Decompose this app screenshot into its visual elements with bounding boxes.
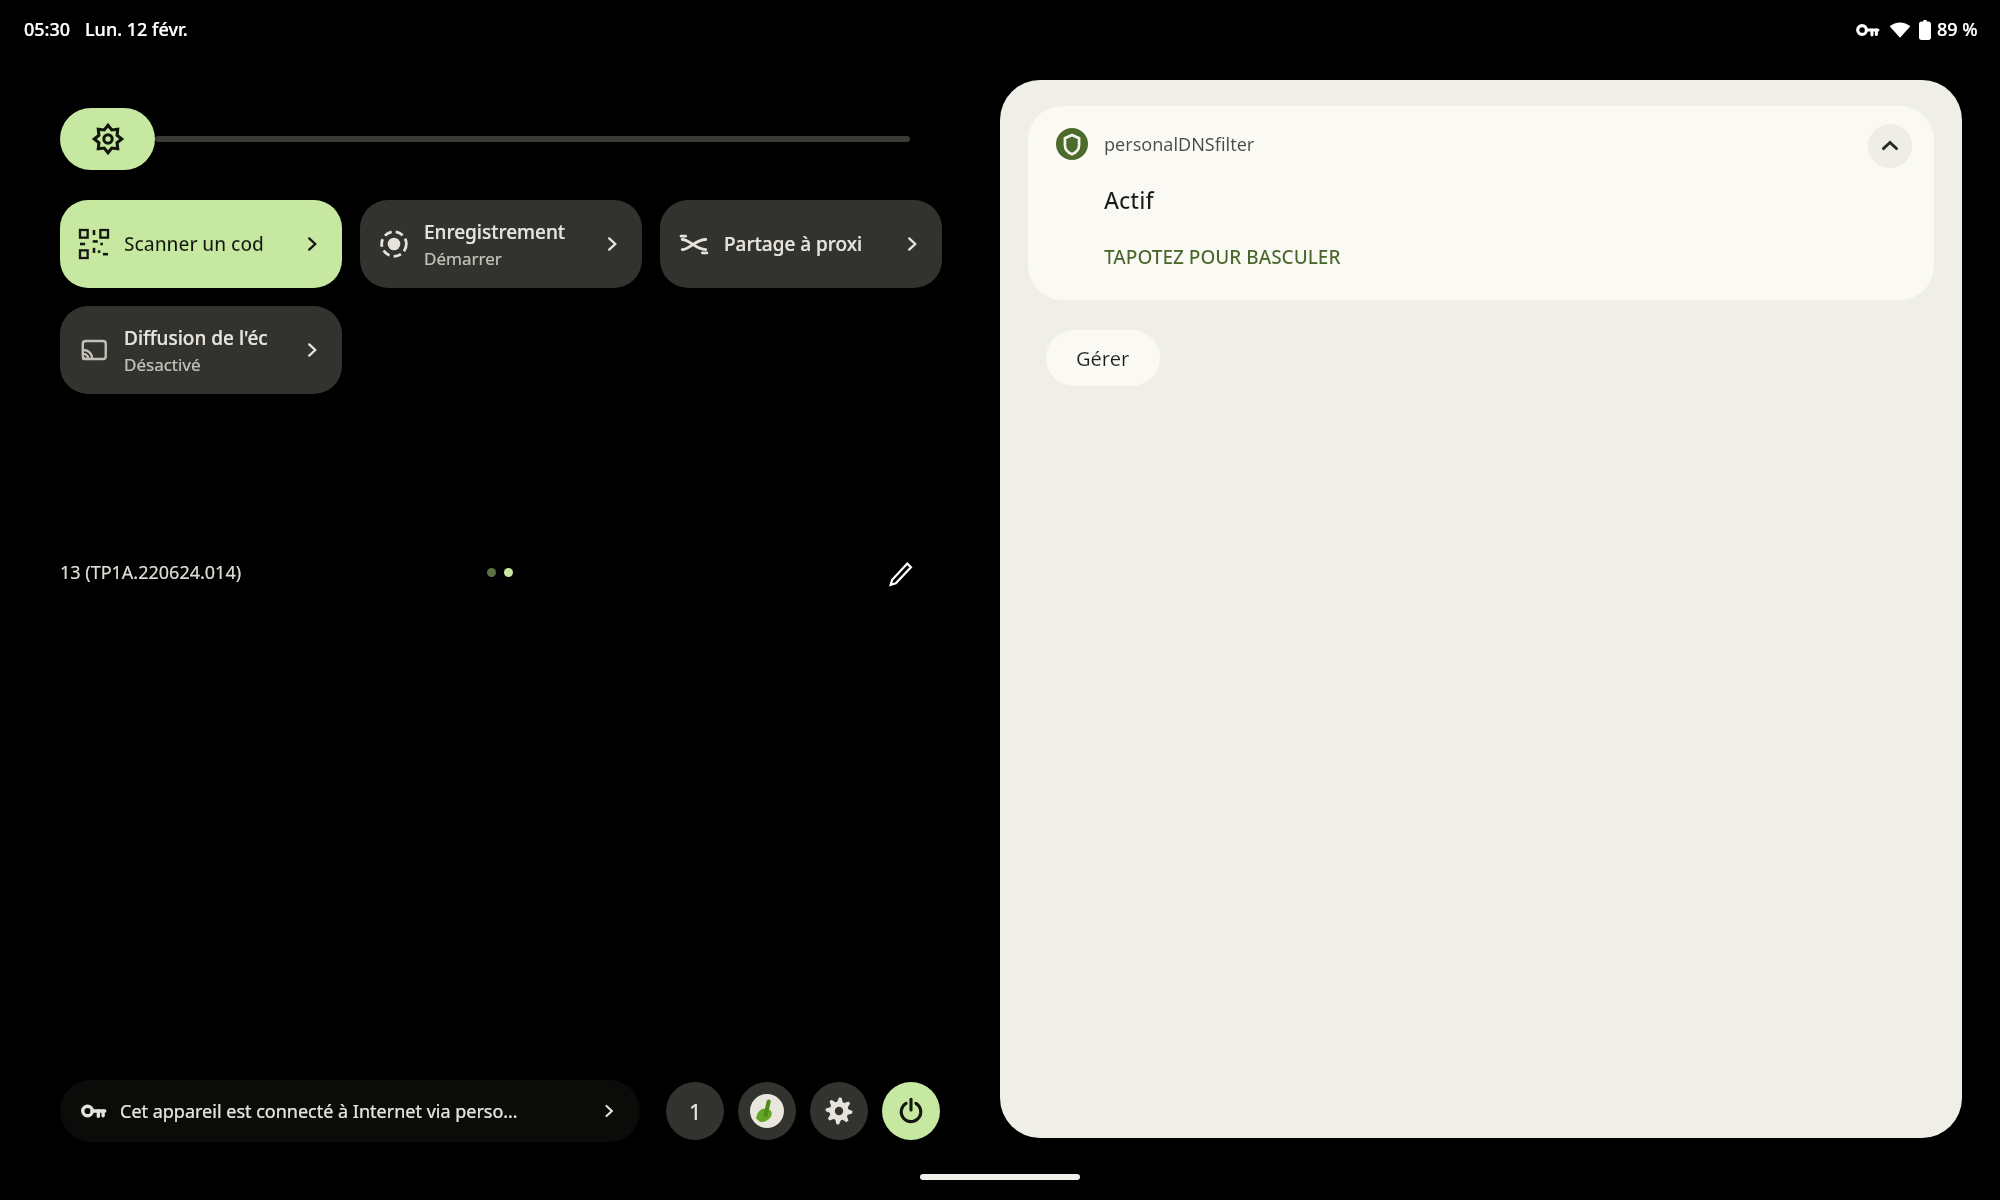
staticText: Diffusion de l'éc [124,325,268,351]
button[interactable]: Paramètres [810,1082,868,1140]
staticText: Gérer [1076,345,1130,372]
button[interactable]: Diffusion de l'éc [60,306,342,394]
button[interactable]: Partage à proxi [660,200,942,288]
staticText: Lun. 12 févr. [85,17,188,42]
staticText: 13 (TP1A.220624.014) [60,560,242,585]
button[interactable]: Cet appareil est connecté à Internet via… [60,1080,640,1142]
staticText: personalDNSfilter [1104,132,1255,157]
staticText: Démarrer [424,247,502,270]
button[interactable]: Notifications [666,1082,724,1140]
staticText: Cet appareil est connecté à Internet via… [120,1099,592,1124]
button[interactable]: Scanner un cod [60,200,342,288]
button[interactable]: Alimentation [882,1082,940,1140]
staticText: Désactivé [124,353,201,376]
staticText: Partage à proxi [724,231,863,257]
button[interactable]: TAPOTEZ POUR BASCULER [1104,244,1341,270]
staticText: 1 [689,1096,702,1126]
button[interactable]: Enregistrement [360,200,642,288]
button[interactable]: Utilisateur [738,1082,796,1140]
button[interactable]: Réduire [1868,124,1912,168]
staticText: 05:30 [24,17,71,42]
staticText: Scanner un cod [124,231,264,257]
staticText: Enregistrement [424,219,566,245]
button[interactable] [60,108,910,170]
button[interactable]: Gérer [1046,330,1160,386]
staticText: Actif [1104,184,1154,215]
staticText: 89 % [1937,17,1978,42]
button[interactable]: Modifier [878,552,922,596]
button[interactable]: personalDNSfilter [1028,106,1934,300]
